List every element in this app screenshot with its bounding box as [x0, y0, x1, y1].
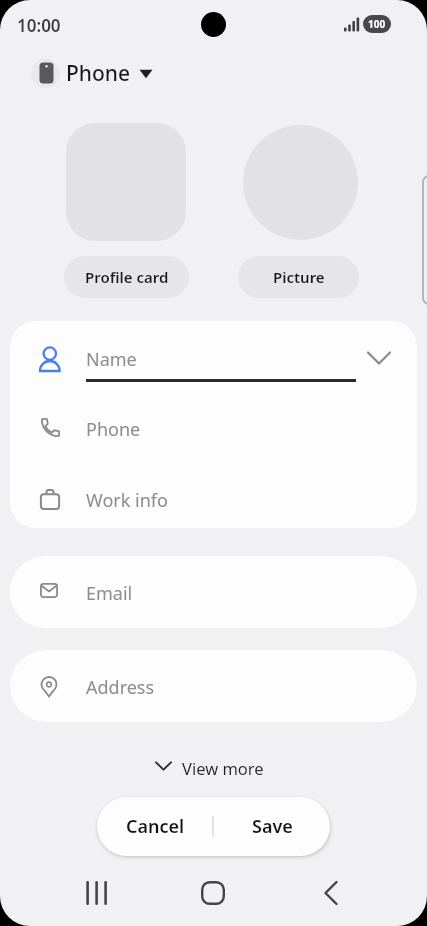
button[interactable] [10, 650, 417, 722]
staticText: Phone [66, 59, 131, 88]
staticText: Picture [273, 267, 325, 287]
button[interactable] [311, 873, 351, 913]
staticText: 100 [368, 17, 386, 31]
button[interactable] [243, 125, 358, 240]
button[interactable]: Profile card [64, 256, 189, 298]
staticText: Name [86, 347, 137, 372]
staticText: Save [252, 814, 293, 839]
button[interactable] [76, 873, 116, 913]
staticText: Cancel [126, 814, 185, 839]
button[interactable]: Cancel [97, 797, 213, 856]
button[interactable] [193, 873, 233, 913]
staticText: Work info [86, 488, 168, 513]
button[interactable] [140, 750, 280, 784]
button[interactable] [10, 468, 417, 528]
button[interactable]: Phone [66, 58, 156, 88]
button[interactable] [10, 330, 417, 392]
button[interactable]: Save [214, 797, 330, 856]
staticText: Phone [86, 417, 141, 442]
staticText: 10:00 [17, 14, 61, 37]
button[interactable]: Picture [238, 256, 359, 298]
staticText: Email [86, 581, 133, 606]
staticText: Profile card [85, 267, 169, 287]
staticText: Address [86, 675, 155, 700]
button[interactable] [66, 123, 186, 241]
button[interactable] [10, 398, 417, 458]
staticText: View more [182, 757, 264, 779]
button[interactable] [10, 556, 417, 628]
